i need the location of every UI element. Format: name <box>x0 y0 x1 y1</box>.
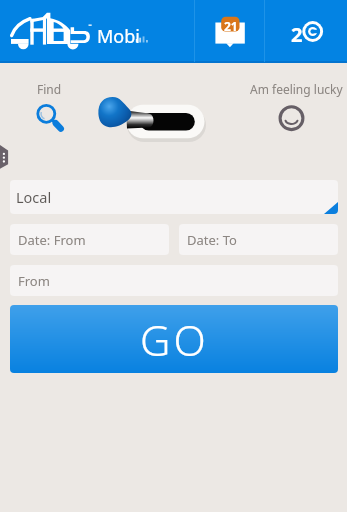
staticText: 21 <box>224 18 238 34</box>
staticText: GO <box>140 311 209 368</box>
staticText: From <box>18 272 50 290</box>
staticText: Local <box>16 187 52 207</box>
button[interactable]: Messages <box>195 0 264 62</box>
button[interactable]: Date: From <box>10 224 169 255</box>
button[interactable]: From <box>10 265 338 296</box>
button[interactable]: GO <box>10 305 338 373</box>
button[interactable]: Find <box>24 76 72 138</box>
staticText: Date: To <box>187 231 237 249</box>
staticText: Am feeling lucky <box>250 81 343 97</box>
button[interactable]: Local <box>10 180 338 214</box>
staticText: Mobi <box>97 24 140 49</box>
button[interactable]: Mobi <box>0 0 194 62</box>
button[interactable]: Am feeling lucky <box>246 76 341 138</box>
button[interactable]: Credits <box>265 0 347 62</box>
staticText: 2 <box>291 21 303 48</box>
button[interactable]: Date: To <box>179 224 338 255</box>
staticText: Date: From <box>18 231 86 249</box>
button[interactable]: Toggle search mode <box>94 94 214 144</box>
staticText: Find <box>37 81 62 97</box>
button[interactable]: Open drawer <box>0 145 9 169</box>
